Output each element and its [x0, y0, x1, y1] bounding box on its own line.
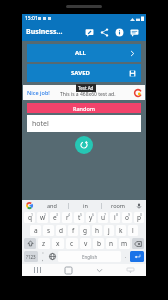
- staticText: i: [114, 213, 116, 222]
- button[interactable]: v: [80, 238, 91, 249]
- staticText: 5: [80, 212, 83, 217]
- button[interactable]: i: [110, 212, 120, 223]
- staticText: 1: [31, 212, 34, 217]
- button[interactable]: e: [50, 212, 60, 223]
- button[interactable]: Messages: [127, 24, 142, 40]
- button[interactable]: Home: [53, 264, 84, 276]
- staticText: c: [70, 239, 74, 248]
- button[interactable]: q: [24, 212, 35, 223]
- staticText: d: [59, 226, 63, 235]
- button[interactable]: room: [102, 200, 134, 211]
- staticText: a: [34, 226, 38, 235]
- button[interactable]: z: [38, 238, 50, 249]
- button[interactable]: Backspace: [132, 238, 144, 249]
- staticText: f: [72, 226, 75, 235]
- staticText: o: [125, 213, 129, 222]
- staticText: 9: [128, 212, 131, 217]
- staticText: room: [111, 202, 125, 209]
- button[interactable]: t: [74, 212, 84, 223]
- button[interactable]: l: [128, 225, 138, 236]
- button[interactable]: d: [56, 225, 66, 236]
- staticText: s: [47, 226, 51, 235]
- button[interactable]: Hide keyboard: [115, 264, 146, 276]
- staticText: 15:01: [25, 15, 38, 22]
- button[interactable]: f: [68, 225, 78, 236]
- staticText: q: [28, 213, 32, 222]
- staticText: v: [84, 239, 88, 248]
- staticText: ALL: [75, 49, 86, 57]
- staticText: English: [82, 254, 98, 260]
- staticText: h: [95, 226, 100, 235]
- button[interactable]: Share: [97, 24, 112, 40]
- button[interactable]: Edit: [82, 24, 97, 40]
- button[interactable]: Voice input: [134, 201, 144, 211]
- button[interactable]: Info: [112, 24, 127, 40]
- staticText: Nice job!: [27, 89, 50, 96]
- button[interactable]: p: [134, 212, 144, 223]
- button[interactable]: SAVED: [27, 64, 141, 82]
- button[interactable]: and: [35, 200, 68, 211]
- staticText: 7: [104, 212, 107, 217]
- staticText: u: [101, 213, 106, 222]
- staticText: 8: [116, 212, 119, 217]
- staticText: r: [66, 213, 69, 222]
- button[interactable]: Random: [27, 103, 141, 113]
- button[interactable]: o: [122, 212, 132, 223]
- button[interactable]: English: [58, 251, 121, 262]
- staticText: n: [109, 239, 114, 248]
- staticText: 4: [68, 212, 71, 217]
- button[interactable]: Google: [24, 200, 35, 211]
- button[interactable]: Comma: [39, 250, 47, 263]
- button[interactable]: h: [92, 225, 102, 236]
- button[interactable]: ?123: [24, 251, 38, 262]
- staticText: .: [125, 253, 127, 260]
- button[interactable]: k: [116, 225, 126, 236]
- button[interactable]: hotel: [27, 115, 141, 132]
- staticText: ?123: [26, 254, 36, 260]
- button[interactable]: j: [104, 225, 114, 236]
- staticText: 3: [56, 212, 59, 217]
- staticText: °: [42, 251, 44, 256]
- staticText: Business...: [26, 27, 82, 37]
- staticText: g: [83, 226, 87, 235]
- staticText: m: [121, 239, 128, 248]
- staticText: hotel: [32, 119, 49, 129]
- button[interactable]: s: [43, 225, 54, 236]
- button[interactable]: g: [80, 225, 90, 236]
- button[interactable]: Enter: [130, 251, 144, 262]
- button[interactable]: Change language: [47, 250, 57, 263]
- button[interactable]: Shift: [24, 238, 36, 249]
- button[interactable]: y: [86, 212, 96, 223]
- staticText: b: [97, 239, 101, 248]
- staticText: x: [56, 239, 60, 248]
- staticText: w: [40, 213, 46, 222]
- button[interactable]: in: [69, 200, 101, 211]
- staticText: 0: [140, 212, 143, 217]
- staticText: y: [89, 213, 93, 222]
- staticText: Test Ad: [78, 85, 94, 91]
- button[interactable]: w: [37, 212, 48, 223]
- staticText: This is a 468x60 test ad.: [60, 91, 116, 98]
- button[interactable]: a: [30, 225, 41, 236]
- button[interactable]: Nice job!: [23, 85, 145, 100]
- button[interactable]: n: [106, 238, 117, 249]
- button[interactable]: Refresh: [75, 136, 93, 154]
- staticText: e: [53, 213, 57, 222]
- button[interactable]: ALL: [27, 44, 141, 62]
- staticText: j: [108, 226, 110, 235]
- button[interactable]: m: [119, 238, 130, 249]
- button[interactable]: r: [62, 212, 72, 223]
- button[interactable]: Period: [122, 250, 129, 263]
- staticText: and: [47, 202, 57, 209]
- staticText: ,: [42, 256, 44, 263]
- button[interactable]: b: [93, 238, 104, 249]
- staticText: k: [119, 226, 123, 235]
- button[interactable]: Recents: [22, 264, 53, 276]
- staticText: 6: [92, 212, 95, 217]
- button[interactable]: u: [98, 212, 108, 223]
- staticText: Random: [73, 105, 96, 112]
- button[interactable]: Back: [84, 264, 115, 276]
- button[interactable]: x: [52, 238, 64, 249]
- staticText: z: [42, 239, 46, 248]
- button[interactable]: c: [66, 238, 78, 249]
